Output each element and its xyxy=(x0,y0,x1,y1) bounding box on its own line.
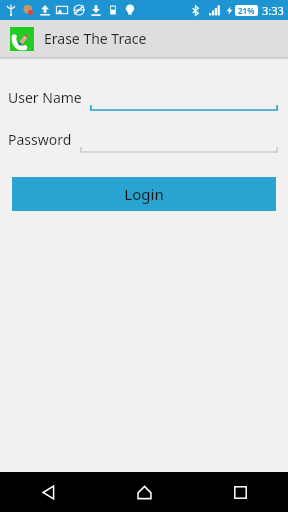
staticText: Erase The Trace xyxy=(44,29,147,48)
button[interactable]: Login xyxy=(12,177,276,211)
staticText: 3:33 xyxy=(262,3,284,18)
button[interactable]: Home xyxy=(96,472,192,512)
button[interactable]: Back xyxy=(0,472,96,512)
staticText: Password xyxy=(8,130,72,149)
button[interactable] xyxy=(80,125,278,153)
staticText: User Name xyxy=(8,88,82,107)
button[interactable] xyxy=(90,83,278,111)
button[interactable]: Recents xyxy=(192,472,288,512)
staticText: 21% xyxy=(238,5,255,16)
staticText: Login xyxy=(124,184,164,204)
